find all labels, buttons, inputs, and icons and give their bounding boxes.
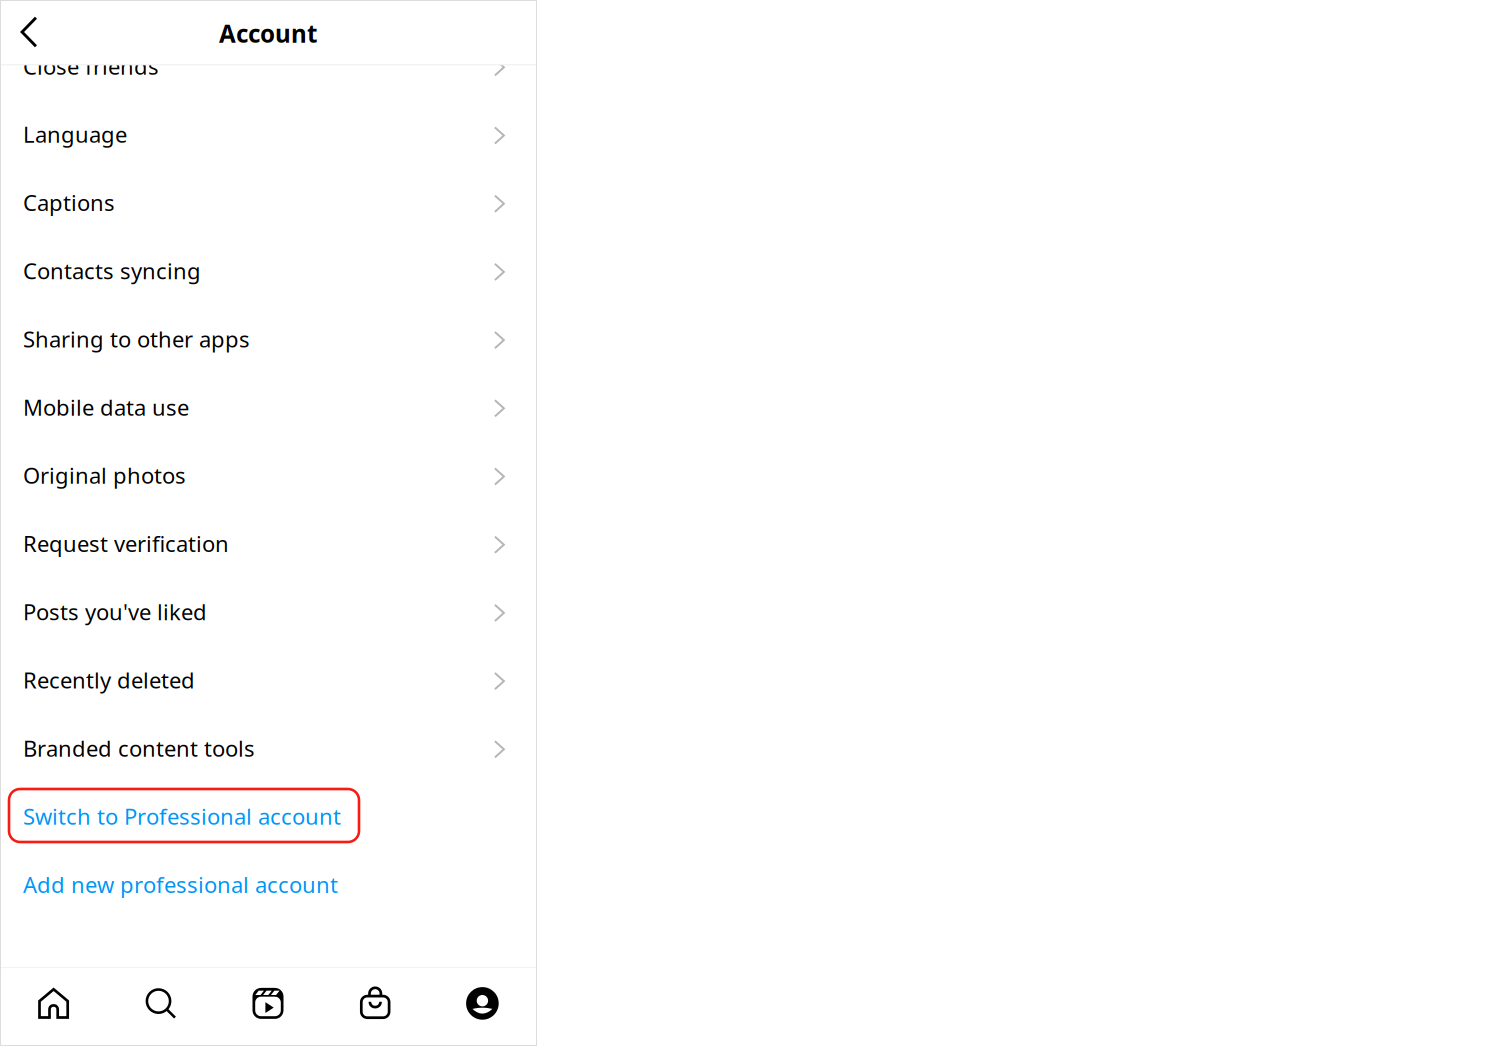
button[interactable]: Branded content tools: [0, 714, 536, 782]
button[interactable]: Captions: [0, 168, 536, 237]
button[interactable]: Request verification: [0, 509, 536, 578]
button[interactable]: Profile: [429, 968, 536, 1047]
button[interactable]: Mobile data use: [0, 373, 536, 441]
button[interactable]: Language: [0, 100, 536, 168]
staticText: Request verification: [23, 529, 229, 558]
button[interactable]: Back: [0, 0, 58, 64]
staticText: Posts you've liked: [23, 597, 207, 626]
button[interactable]: Home: [0, 968, 107, 1047]
button[interactable]: Shop: [322, 968, 429, 1047]
staticText: Switch to Professional account: [23, 802, 341, 831]
button[interactable]: Close friends: [0, 32, 536, 100]
staticText: Account: [219, 17, 317, 49]
staticText: Branded content tools: [23, 733, 255, 763]
staticText: Original photos: [23, 461, 186, 490]
button[interactable]: Search: [107, 968, 214, 1047]
button[interactable]: Switch to Professional account: [0, 782, 536, 850]
staticText: Recently deleted: [23, 665, 195, 694]
staticText: Captions: [23, 188, 115, 217]
button[interactable]: Add new professional account: [0, 850, 536, 919]
button[interactable]: Contacts syncing: [0, 237, 536, 305]
button[interactable]: Original photos: [0, 441, 536, 509]
staticText: Sharing to other apps: [23, 324, 250, 353]
staticText: Language: [23, 120, 127, 149]
button[interactable]: Reels: [214, 968, 322, 1047]
staticText: Add new professional account: [23, 870, 338, 899]
button[interactable]: Sharing to other apps: [0, 305, 536, 373]
staticText: Close friends: [23, 51, 159, 81]
staticText: Mobile data use: [23, 392, 189, 422]
button[interactable]: Posts you've liked: [0, 578, 536, 646]
staticText: Contacts syncing: [23, 256, 201, 285]
button[interactable]: Recently deleted: [0, 646, 536, 714]
